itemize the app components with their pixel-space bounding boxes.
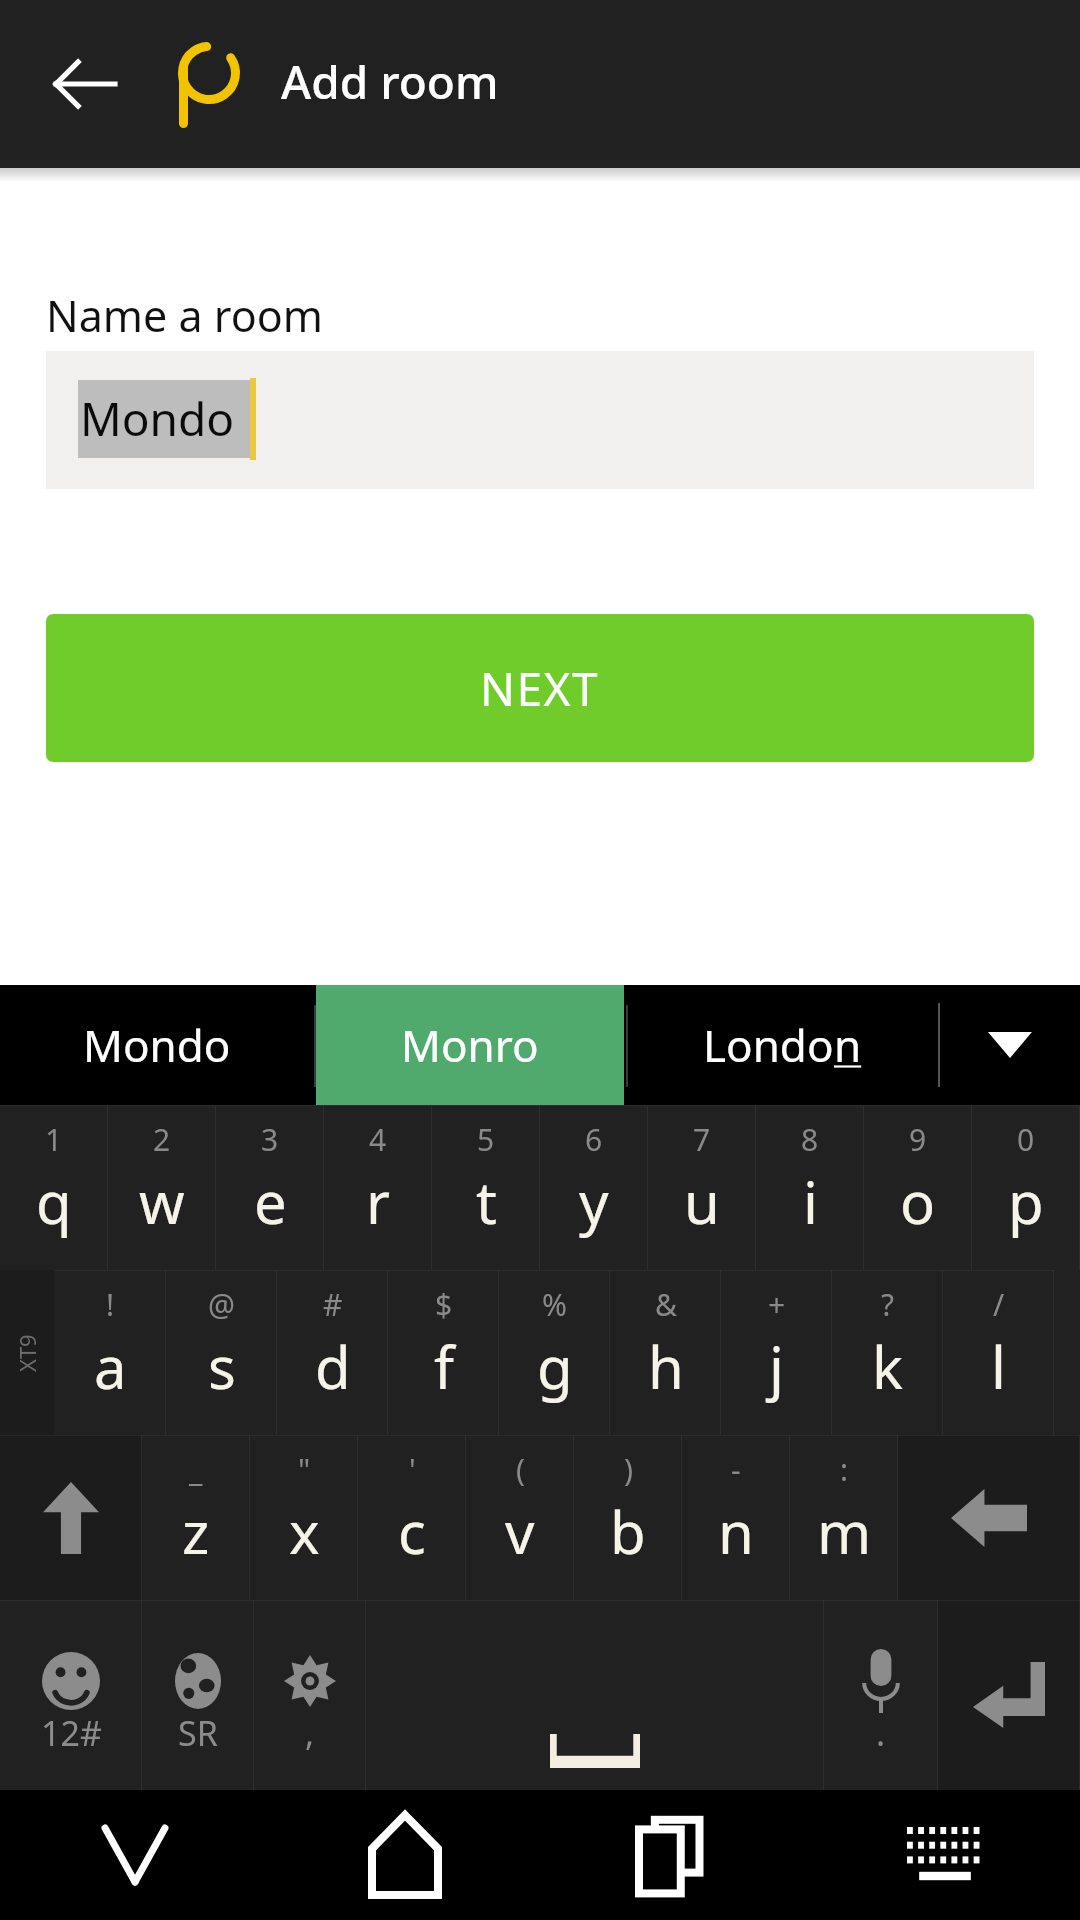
- staticText: x: [289, 1492, 320, 1571]
- staticText: (: [516, 1449, 525, 1490]
- staticText: p: [1008, 1162, 1044, 1241]
- staticText: XT9: [12, 1334, 42, 1372]
- staticText: e: [254, 1162, 287, 1241]
- button[interactable]: x: [250, 1435, 358, 1600]
- button[interactable]: Monro: [316, 985, 624, 1105]
- staticText: u: [684, 1162, 720, 1241]
- button[interactable]: s: [166, 1270, 277, 1435]
- staticText: Mondo: [83, 1015, 231, 1075]
- button[interactable]: Mondo: [46, 351, 1034, 489]
- button[interactable]: d: [277, 1270, 388, 1435]
- staticText: Add room: [281, 50, 499, 113]
- button[interactable]: Londo: [628, 985, 936, 1105]
- button[interactable]: f: [388, 1270, 499, 1435]
- staticText: ): [624, 1449, 633, 1490]
- staticText: k: [872, 1327, 903, 1406]
- staticText: 4: [369, 1119, 387, 1160]
- button[interactable]: w: [108, 1105, 216, 1270]
- button[interactable]: p: [972, 1105, 1080, 1270]
- button[interactable]: Switch keyboard: [810, 1790, 1080, 1920]
- button[interactable]: Mondo: [0, 985, 314, 1105]
- button[interactable]: n: [682, 1435, 790, 1600]
- button[interactable]: m: [790, 1435, 898, 1600]
- staticText: b: [610, 1492, 646, 1571]
- staticText: ": [298, 1449, 311, 1490]
- staticText: Monro: [401, 1015, 539, 1075]
- staticText: _: [189, 1449, 203, 1490]
- button[interactable]: k: [832, 1270, 943, 1435]
- button[interactable]: Backspace: [898, 1435, 1080, 1600]
- staticText: y: [579, 1162, 609, 1241]
- button[interactable]: a: [54, 1270, 166, 1435]
- staticText: /: [993, 1284, 1005, 1325]
- button[interactable]: Emoji: [0, 1600, 142, 1790]
- staticText: j: [769, 1327, 784, 1406]
- button[interactable]: NEXT: [46, 614, 1034, 762]
- button[interactable]: Voice input: [824, 1600, 938, 1790]
- button[interactable]: Space: [366, 1600, 824, 1790]
- staticText: t: [476, 1162, 497, 1241]
- staticText: 0: [1017, 1119, 1035, 1160]
- staticText: h: [648, 1327, 684, 1406]
- button[interactable]: l: [943, 1270, 1054, 1435]
- staticText: 3: [261, 1119, 279, 1160]
- button[interactable]: More suggestions: [940, 985, 1080, 1105]
- button[interactable]: t: [432, 1105, 540, 1270]
- button[interactable]: i: [756, 1105, 864, 1270]
- button[interactable]: z: [142, 1435, 250, 1600]
- staticText: !: [106, 1284, 115, 1325]
- button[interactable]: r: [324, 1105, 432, 1270]
- button[interactable]: h: [610, 1270, 721, 1435]
- staticText: SR: [178, 1710, 218, 1756]
- staticText: 5: [477, 1119, 495, 1160]
- staticText: o: [900, 1162, 936, 1241]
- button[interactable]: Recent apps: [540, 1790, 810, 1920]
- staticText: 2: [153, 1119, 171, 1160]
- staticText: i: [803, 1162, 818, 1241]
- button[interactable]: Home: [270, 1790, 540, 1920]
- staticText: ?: [881, 1284, 895, 1325]
- staticText: $: [435, 1284, 453, 1325]
- button[interactable]: j: [721, 1270, 832, 1435]
- staticText: 8: [801, 1119, 819, 1160]
- button[interactable]: [316, 985, 624, 1105]
- button[interactable]: u: [648, 1105, 756, 1270]
- staticText: a: [94, 1327, 127, 1406]
- staticText: f: [434, 1327, 454, 1406]
- button[interactable]: y: [540, 1105, 648, 1270]
- button[interactable]: Shift: [0, 1435, 142, 1600]
- staticText: +: [768, 1284, 786, 1325]
- staticText: v: [505, 1492, 535, 1571]
- staticText: d: [315, 1327, 351, 1406]
- staticText: Londo: [703, 1015, 834, 1075]
- staticText: 6: [585, 1119, 603, 1160]
- button[interactable]: e: [216, 1105, 324, 1270]
- button[interactable]: Keyboard settings: [254, 1600, 366, 1790]
- staticText: n: [718, 1492, 754, 1571]
- staticText: 7: [693, 1119, 711, 1160]
- staticText: c: [398, 1492, 426, 1571]
- staticText: Mondo: [80, 387, 235, 450]
- staticText: l: [991, 1327, 1006, 1406]
- staticText: -: [731, 1449, 741, 1490]
- staticText: @: [208, 1284, 235, 1325]
- button[interactable]: Hide keyboard: [0, 1790, 270, 1920]
- staticText: 12#: [41, 1710, 102, 1756]
- staticText: ,: [305, 1710, 315, 1756]
- staticText: w: [139, 1162, 185, 1241]
- button[interactable]: b: [574, 1435, 682, 1600]
- button[interactable]: g: [499, 1270, 610, 1435]
- button[interactable]: q: [0, 1105, 108, 1270]
- staticText: z: [182, 1492, 210, 1571]
- button[interactable]: v: [466, 1435, 574, 1600]
- staticText: q: [36, 1162, 72, 1241]
- button[interactable]: o: [864, 1105, 972, 1270]
- staticText: NEXT: [480, 657, 600, 720]
- staticText: Name a room: [46, 286, 323, 345]
- staticText: s: [208, 1327, 236, 1406]
- button[interactable]: Back: [38, 51, 132, 117]
- button[interactable]: Enter: [938, 1600, 1080, 1790]
- button[interactable]: Change language: [142, 1600, 254, 1790]
- button[interactable]: c: [358, 1435, 466, 1600]
- staticText: ': [409, 1449, 416, 1490]
